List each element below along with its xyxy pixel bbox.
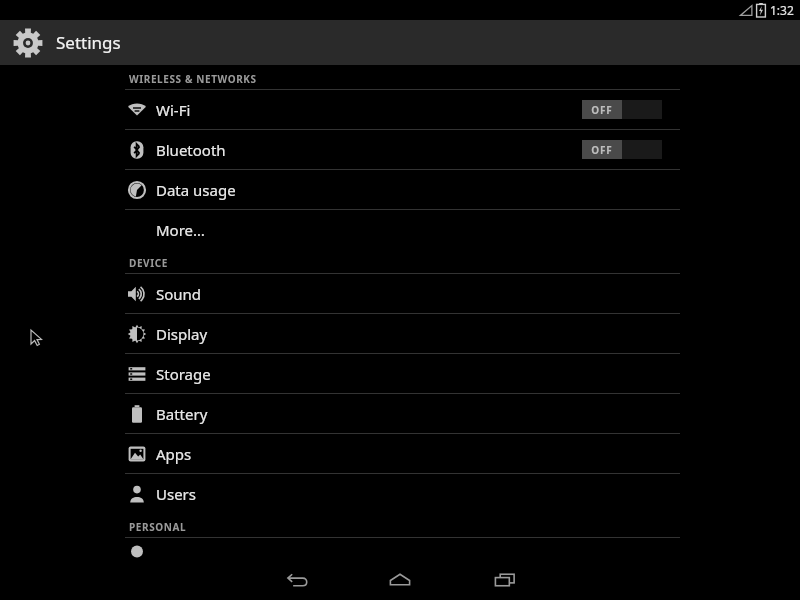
- button[interactable]: Wi-Fi: [0, 90, 800, 129]
- staticText: Battery: [156, 404, 208, 424]
- staticText: Bluetooth: [156, 140, 226, 160]
- staticText: Apps: [156, 444, 192, 464]
- button[interactable]: OFF: [582, 140, 662, 159]
- staticText: DEVICE: [129, 256, 168, 270]
- button[interactable]: Users: [0, 474, 800, 513]
- other: Settings: [12, 27, 44, 59]
- staticText: Settings: [56, 31, 121, 54]
- button[interactable]: Bluetooth: [0, 130, 800, 169]
- button[interactable]: Back: [273, 560, 321, 600]
- staticText: Users: [156, 484, 196, 504]
- staticText: Wi-Fi: [156, 100, 191, 120]
- staticText: OFF: [582, 143, 622, 157]
- button[interactable]: More…: [0, 210, 800, 249]
- button[interactable]: Battery: [0, 394, 800, 433]
- button[interactable]: Settings: [0, 20, 800, 65]
- staticText: 1:32: [770, 2, 794, 18]
- button[interactable]: Data usage: [0, 170, 800, 209]
- staticText: PERSONAL: [129, 520, 187, 534]
- staticText: OFF: [582, 103, 622, 117]
- staticText: Sound: [156, 284, 202, 304]
- button[interactable]: [0, 538, 800, 560]
- staticText: WIRELESS & NETWORKS: [129, 72, 257, 86]
- staticText: More…: [156, 220, 205, 240]
- button[interactable]: Display: [0, 314, 800, 353]
- button[interactable]: Apps: [0, 434, 800, 473]
- staticText: Data usage: [156, 180, 236, 200]
- button[interactable]: Storage: [0, 354, 800, 393]
- button[interactable]: Home: [376, 560, 424, 600]
- button[interactable]: OFF: [582, 100, 662, 119]
- button[interactable]: Sound: [0, 274, 800, 313]
- staticText: Storage: [156, 364, 211, 384]
- button[interactable]: Recent apps: [481, 560, 529, 600]
- staticText: Display: [156, 324, 208, 344]
